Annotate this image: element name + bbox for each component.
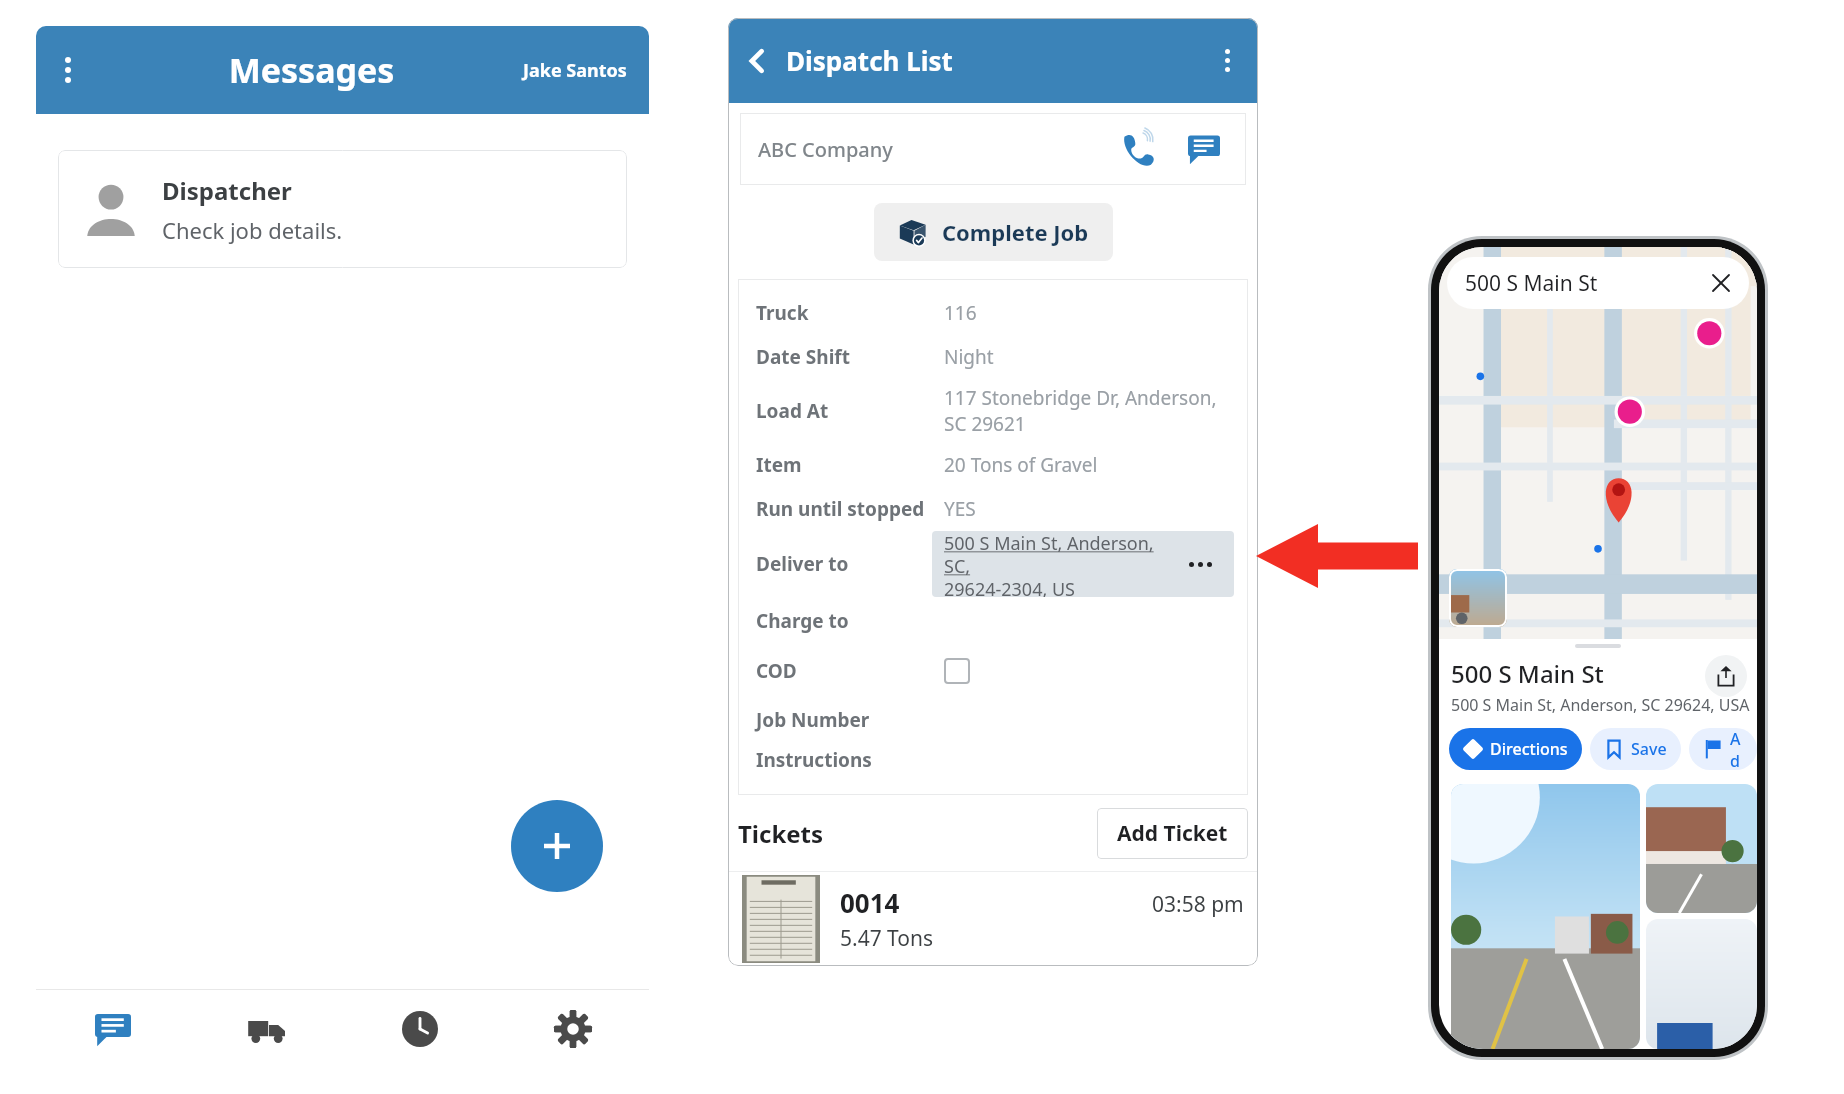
staticText: Run until stopped [756,496,944,522]
button[interactable]: History [343,990,496,1068]
button[interactable]: Add [511,800,603,892]
button[interactable]: More options [1196,18,1258,103]
button[interactable]: Save [1590,728,1681,770]
staticText: Dispatcher [162,174,292,207]
staticText: 500 S Main St, Anderson, SC, 29624-2304,… [944,531,1183,597]
staticText: 500 S Main St [1451,657,1604,690]
staticText: YES [944,496,976,522]
button[interactable]: 500 S Main St, Anderson, SC, 29624-2304,… [932,531,1234,597]
button[interactable]: Jake Santos [523,58,627,83]
staticText: COD [756,658,944,684]
staticText: 5.47 Tons [840,924,934,953]
button[interactable]: Call [1112,123,1164,175]
button[interactable]: Message [1178,123,1230,175]
button[interactable]: Back [728,18,786,103]
button[interactable]: ABC Company [740,113,1246,185]
button[interactable]: 0014 [742,872,1244,966]
button[interactable]: Complete Job [874,203,1113,261]
staticText: Directions [1490,738,1568,760]
staticText: Messages [100,47,523,93]
staticText: Dispatch List [786,43,953,78]
button[interactable]: 500 S Main St [1447,257,1749,309]
staticText: Save [1631,738,1667,760]
staticText: Add label [1730,728,1743,770]
staticText: Instructions [756,747,944,773]
button[interactable]: COD checkbox [944,658,970,684]
button[interactable] [1451,784,1640,1049]
staticText: 117 Stonebridge Dr, Anderson, SC 29621 [944,385,1234,437]
staticText: 500 S Main St, Anderson, SC 29624, USA [1451,694,1750,716]
staticText: 20 Tons of Gravel [944,452,1098,478]
button[interactable]: Trucks [190,990,343,1068]
staticText: 116 [944,300,977,326]
button[interactable]: Dispatcher [58,150,627,268]
staticText: 500 S Main St [1465,269,1598,298]
staticText: Complete Job [942,217,1089,247]
staticText: Add Ticket [1117,819,1228,848]
staticText: Job Number [756,707,944,733]
button[interactable] [1646,784,1757,913]
staticText: 0014 [840,885,900,920]
staticText: ABC Company [758,136,893,163]
staticText: Check job details. [162,215,343,245]
button[interactable]: Add Ticket [1097,808,1248,859]
staticText: Load At [756,398,944,424]
staticText: Truck [756,300,944,326]
staticText: Date Shift [756,344,944,370]
staticText: Deliver to [756,551,932,577]
button[interactable]: Menu [36,26,100,114]
button[interactable]: Directions [1449,728,1582,770]
staticText: Tickets [738,817,824,850]
staticText: 03:58 pm [1152,890,1244,919]
button[interactable] [1449,569,1507,627]
staticText: Night [944,344,994,370]
staticText: Charge to [756,608,944,634]
staticText: Jake Santos [523,58,627,83]
button[interactable]: Close [1701,263,1741,303]
button[interactable]: Add label [1689,728,1757,770]
button[interactable]: Settings [496,990,649,1068]
button[interactable]: Messages [36,990,190,1068]
button[interactable]: Share [1705,655,1747,697]
staticText: Item [756,452,944,478]
button[interactable] [1646,919,1757,1049]
